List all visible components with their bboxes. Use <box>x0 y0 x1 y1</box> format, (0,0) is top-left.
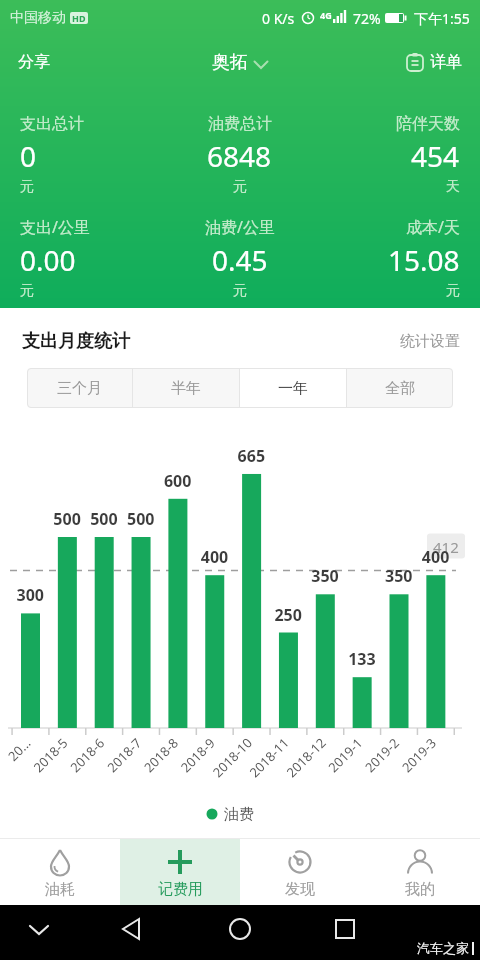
staticText: 元 <box>20 178 34 196</box>
staticText: 陪伴天数 <box>396 114 460 134</box>
staticText: 发现 <box>285 880 315 899</box>
staticText: 元 <box>446 282 460 300</box>
staticText: 全部 <box>385 379 415 398</box>
staticText: 奥拓 <box>212 51 248 74</box>
staticText: 下午1:55 <box>414 9 470 28</box>
staticText: 4G <box>320 9 332 21</box>
staticText: 统计设置 <box>400 332 460 351</box>
staticText: 454 <box>411 137 460 175</box>
button[interactable]: 三个月 <box>27 368 132 408</box>
button[interactable]: 分享 <box>10 44 58 80</box>
staticText: 6848 <box>207 137 272 175</box>
button[interactable] <box>222 912 258 952</box>
staticText: 中国移动 <box>10 9 66 27</box>
staticText: 15.08 <box>388 241 460 279</box>
button[interactable]: 统计设置 <box>400 332 460 351</box>
staticText: 一年 <box>278 379 308 398</box>
button[interactable]: 奥拓 <box>208 47 272 78</box>
button[interactable]: 全部 <box>347 368 453 408</box>
staticText: 油耗 <box>45 880 75 899</box>
staticText: 支出/公里 <box>20 216 90 238</box>
staticText: 支出月度统计 <box>22 330 130 353</box>
button[interactable]: 发现 <box>240 839 360 905</box>
staticText: 油费总计 <box>208 114 272 134</box>
staticText: 支出总计 <box>20 114 84 134</box>
button[interactable] <box>114 912 150 952</box>
staticText: 0 <box>20 137 37 175</box>
staticText: 元 <box>233 282 247 300</box>
staticText: 汽车之家 <box>417 940 469 956</box>
staticText: 0.00 <box>20 241 76 279</box>
staticText: HD <box>72 12 86 24</box>
staticText: 72% <box>353 9 381 28</box>
staticText: 记费用 <box>158 880 203 899</box>
staticText: 我的 <box>405 880 435 899</box>
button[interactable] <box>22 912 56 952</box>
staticText: 0 K/s <box>262 9 295 28</box>
button[interactable]: 我的 <box>360 839 480 905</box>
staticText: 半年 <box>171 379 201 398</box>
button[interactable] <box>327 912 363 952</box>
staticText: 油费/公里 <box>205 216 275 238</box>
staticText: 元 <box>233 178 247 196</box>
button[interactable]: 油耗 <box>0 839 120 905</box>
button[interactable]: 详单 <box>401 48 466 76</box>
staticText: 详单 <box>430 52 462 72</box>
staticText: 0.45 <box>212 241 268 279</box>
button[interactable]: 一年 <box>240 368 346 408</box>
button[interactable]: 记费用 <box>120 839 240 905</box>
staticText: 元 <box>20 282 34 300</box>
staticText: 分享 <box>18 52 50 72</box>
staticText: 成本/天 <box>406 216 460 238</box>
button[interactable]: 半年 <box>133 368 239 408</box>
staticText: 天 <box>446 178 460 196</box>
staticText: 三个月 <box>57 379 102 398</box>
